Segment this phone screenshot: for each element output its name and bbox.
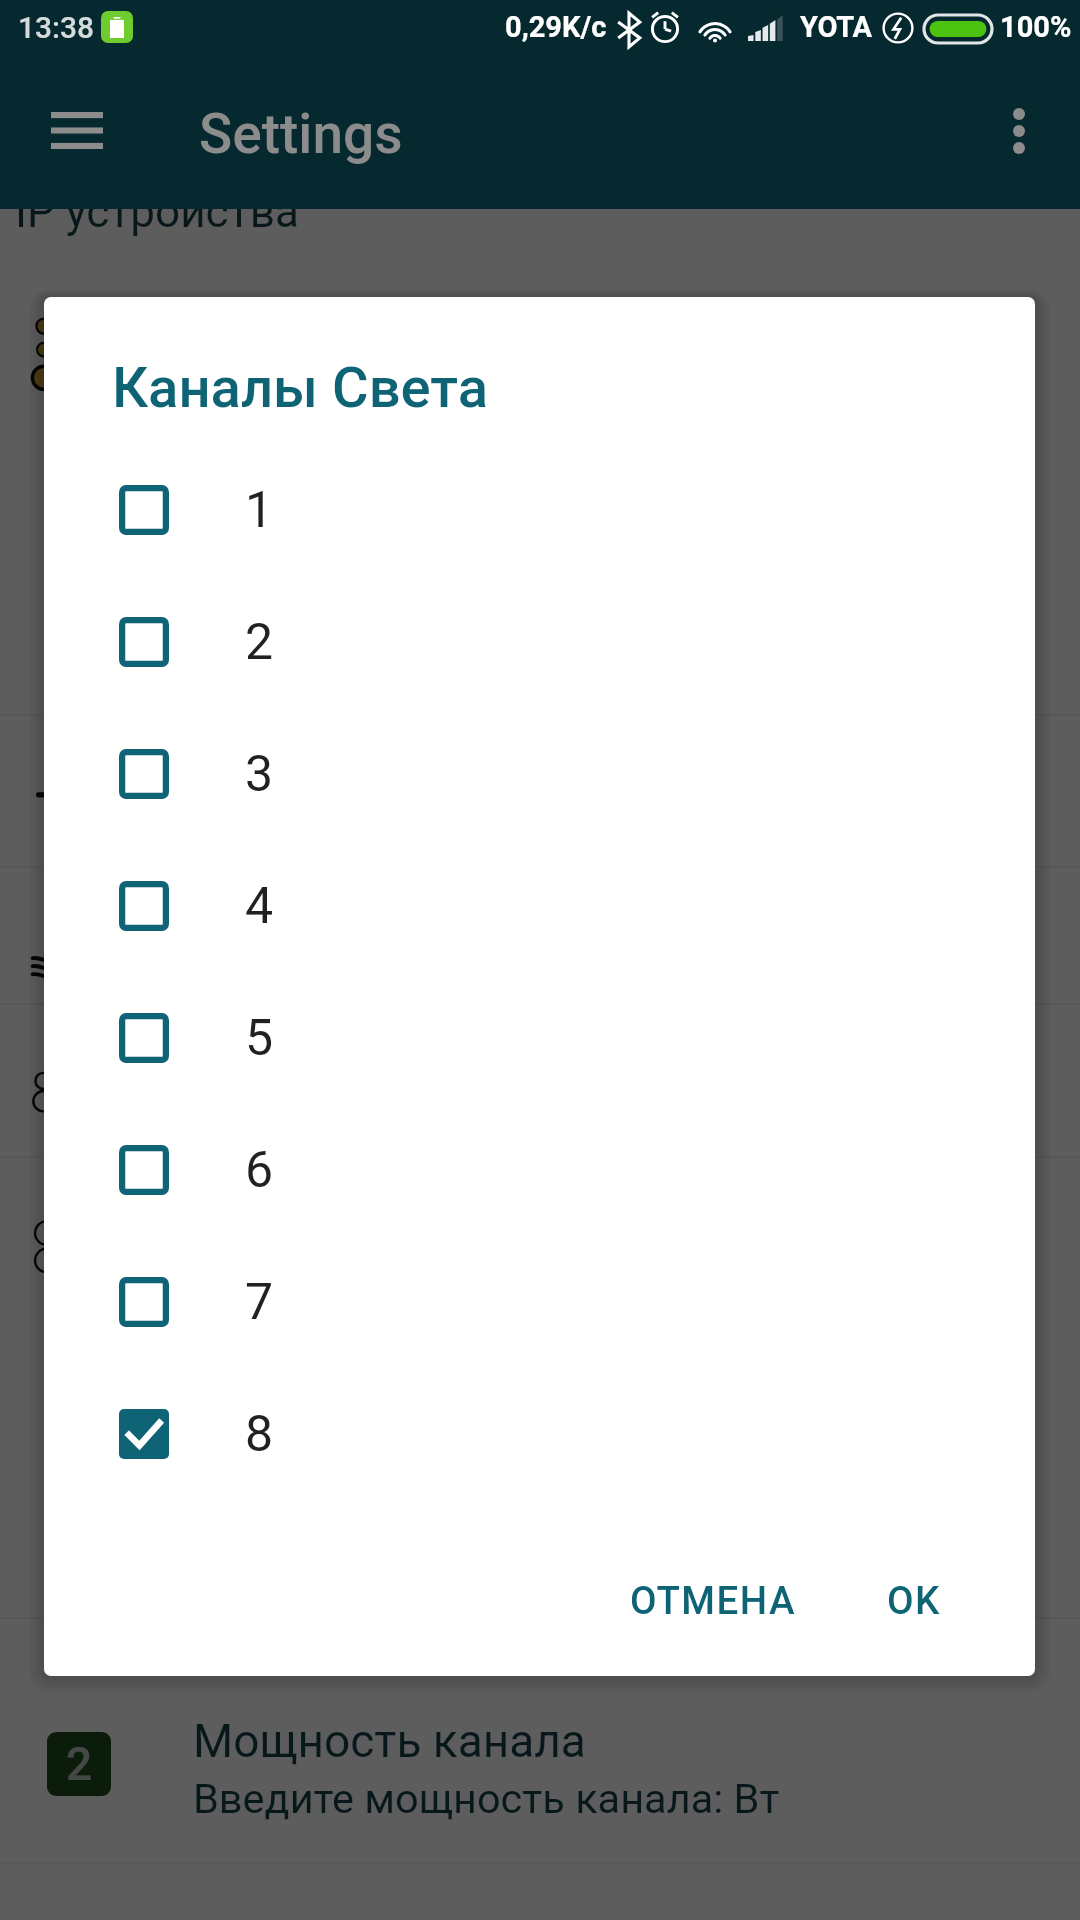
button[interactable]: Время <box>0 1500 1080 1640</box>
button[interactable]: Каналы Света <box>0 307 1080 447</box>
button[interactable]: 6 <box>44 1104 1035 1236</box>
staticText: IP устройства <box>15 186 299 238</box>
button[interactable]: Чувствительность <box>0 925 1080 1065</box>
button[interactable]: More options <box>975 87 1063 175</box>
button[interactable]: 2 <box>0 1719 1080 1859</box>
button[interactable]: 4 <box>44 840 1035 972</box>
button[interactable]: 3 <box>44 708 1035 840</box>
button[interactable]: Режим работы <box>0 1350 1080 1490</box>
button[interactable]: 5 <box>44 972 1035 1104</box>
staticText: YOTA <box>800 10 873 44</box>
staticText: 5 <box>245 1009 274 1068</box>
staticText: Чувствительность <box>193 920 592 974</box>
staticText: Каналы Света <box>112 355 488 421</box>
staticText: 13:38 <box>18 10 95 45</box>
staticText: 7 <box>245 1273 274 1332</box>
staticText: 6 <box>245 1141 274 1200</box>
button[interactable]: OK <box>861 1558 967 1643</box>
staticText: 2 <box>245 613 274 672</box>
staticText: Количество каналов <box>193 1033 642 1087</box>
staticText: Выберите режим <box>193 1405 526 1454</box>
button[interactable]: 7 <box>44 1236 1035 1368</box>
button[interactable]: 1 <box>44 444 1035 576</box>
staticText: 2 <box>66 1737 93 1791</box>
staticText: Введите задержку: сек <box>193 1248 639 1297</box>
staticText: 8 <box>245 1405 274 1464</box>
staticText: 100% <box>1000 10 1072 44</box>
staticText: Введите мощность канала: Вт <box>193 1774 780 1823</box>
button[interactable]: Задержка <box>0 1200 1080 1340</box>
staticText: Выберите каналы света <box>193 367 662 416</box>
button[interactable]: ОТМЕНА <box>604 1558 823 1643</box>
staticText: Порог срабатывания <box>193 745 648 799</box>
button[interactable]: Количество каналов <box>0 1045 1080 1185</box>
staticText: Введите чувствительность <box>193 980 719 1029</box>
staticText: Мощность канала <box>193 1714 586 1768</box>
staticText: 3 <box>245 745 274 804</box>
button[interactable]: Порог срабатывания <box>0 750 1080 890</box>
staticText: 4 <box>245 877 274 936</box>
staticText: 0,29K/c <box>505 10 607 44</box>
staticText: Settings <box>199 102 403 166</box>
staticText: OK <box>887 1578 941 1623</box>
button[interactable]: Navigation menu <box>27 100 127 160</box>
staticText: 1 <box>245 481 274 540</box>
button[interactable]: 2 <box>44 576 1035 708</box>
staticText: ОТМЕНА <box>630 1578 797 1623</box>
button[interactable]: 8 <box>44 1368 1035 1500</box>
